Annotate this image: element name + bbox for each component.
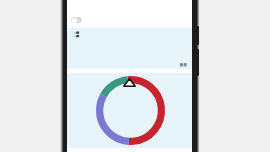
button[interactable]: Toggle setting <box>71 17 82 23</box>
button[interactable] <box>67 73 192 148</box>
button[interactable] <box>67 28 192 69</box>
